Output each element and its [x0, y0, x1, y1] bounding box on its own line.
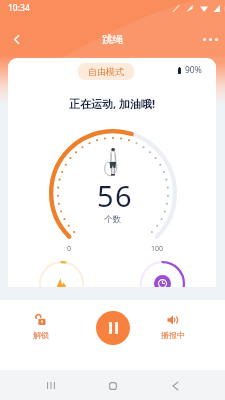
staticText: 个数 — [104, 214, 121, 225]
staticText: 自由模式 — [88, 66, 124, 77]
button[interactable]: 播报中 — [156, 314, 189, 341]
button[interactable]: 自由模式 — [78, 63, 134, 80]
staticText: 播报中 — [161, 330, 185, 340]
button[interactable]: Pause — [96, 311, 130, 345]
button[interactable]: 解锁 — [24, 314, 57, 341]
button[interactable]: Back — [2, 27, 30, 51]
button[interactable]: Home — [99, 372, 126, 399]
staticText: 10:34 — [8, 2, 30, 14]
button[interactable]: Recents — [37, 372, 64, 399]
staticText: 跳绳 — [102, 33, 123, 46]
staticText: 0 — [67, 244, 72, 254]
staticText: 正在运动, 加油哦! — [69, 96, 156, 111]
staticText: 100 — [151, 244, 164, 254]
button[interactable]: Back — [162, 372, 189, 399]
button[interactable]: More options — [195, 27, 225, 51]
staticText: 解锁 — [33, 330, 49, 340]
staticText: 56 — [97, 176, 134, 215]
staticText: 90% — [185, 64, 202, 76]
